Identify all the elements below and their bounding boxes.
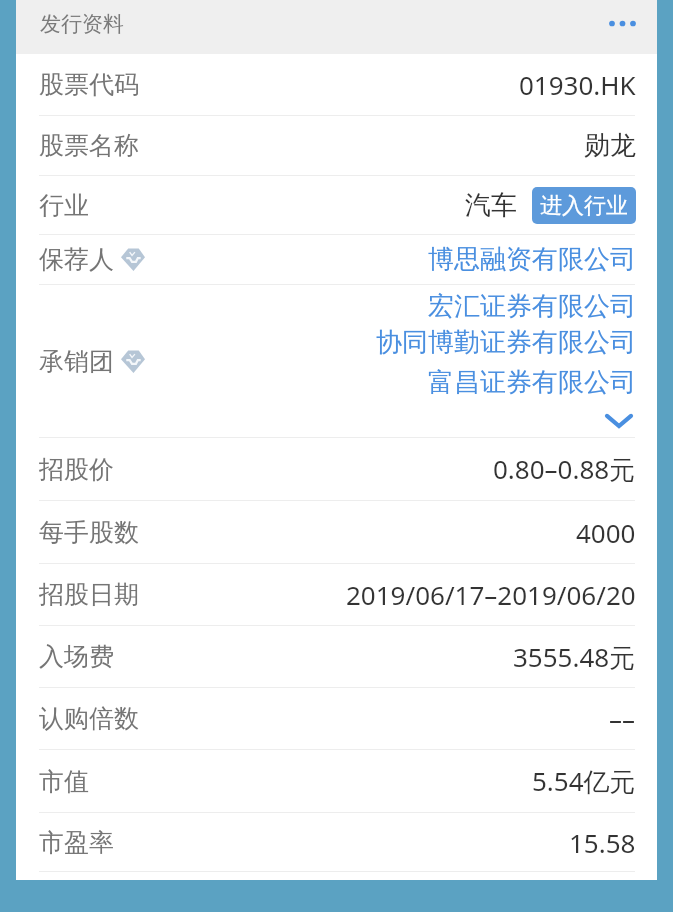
staticText: 市盈率	[39, 827, 114, 858]
staticText: 15.58	[569, 825, 636, 860]
button[interactable]: 市盈率	[16, 813, 657, 871]
staticText: 招股日期	[39, 579, 139, 610]
button[interactable]: 保荐人	[16, 235, 657, 284]
button[interactable]: Expand	[596, 414, 636, 428]
staticText: ––	[609, 701, 636, 736]
staticText: 发行资料	[40, 11, 124, 37]
staticText: 股票代码	[39, 69, 139, 100]
staticText: 宏汇证券有限公司	[428, 290, 636, 323]
staticText: 富昌证券有限公司	[428, 366, 636, 399]
staticText: 4000	[576, 515, 636, 550]
button[interactable]: More options	[601, 5, 645, 49]
staticText: 0.80–0.88元	[493, 451, 636, 487]
staticText: 勋龙	[584, 129, 636, 162]
staticText: 每手股数	[39, 517, 139, 548]
button[interactable]: 股票代码	[16, 54, 657, 115]
button[interactable]: 入场费	[16, 626, 657, 687]
staticText: 入场费	[39, 641, 114, 672]
staticText: 行业	[39, 190, 89, 221]
button[interactable]: 协同博勤证券有限公司	[376, 326, 636, 359]
button[interactable]: 招股日期	[16, 564, 657, 625]
button[interactable]: 进入行业	[532, 187, 636, 224]
staticText: 市值	[39, 766, 89, 797]
button[interactable]: 认购倍数	[16, 688, 657, 749]
staticText: 进入行业	[540, 192, 628, 220]
staticText: 01930.HK	[519, 67, 636, 102]
staticText: 2019/06/17–2019/06/20	[346, 577, 636, 612]
button[interactable]: 招股价	[16, 438, 657, 500]
button[interactable]: 行业	[16, 176, 657, 234]
staticText: 招股价	[39, 454, 114, 485]
staticText: 汽车	[465, 189, 517, 222]
button[interactable]: 股票名称	[16, 116, 657, 175]
staticText: 协同博勤证券有限公司	[376, 326, 636, 359]
staticText: 保荐人	[39, 244, 114, 275]
staticText: 5.54亿元	[532, 763, 636, 799]
staticText: 认购倍数	[39, 703, 139, 734]
button[interactable]: 每手股数	[16, 501, 657, 563]
staticText: 承销团	[39, 346, 114, 377]
staticText: 博思融资有限公司	[428, 243, 636, 276]
button[interactable]: 市值	[16, 750, 657, 812]
staticText: 3555.48元	[513, 639, 636, 675]
button[interactable]: 富昌证券有限公司	[428, 366, 636, 399]
button[interactable]: 宏汇证券有限公司	[428, 290, 636, 323]
staticText: 股票名称	[39, 130, 139, 161]
